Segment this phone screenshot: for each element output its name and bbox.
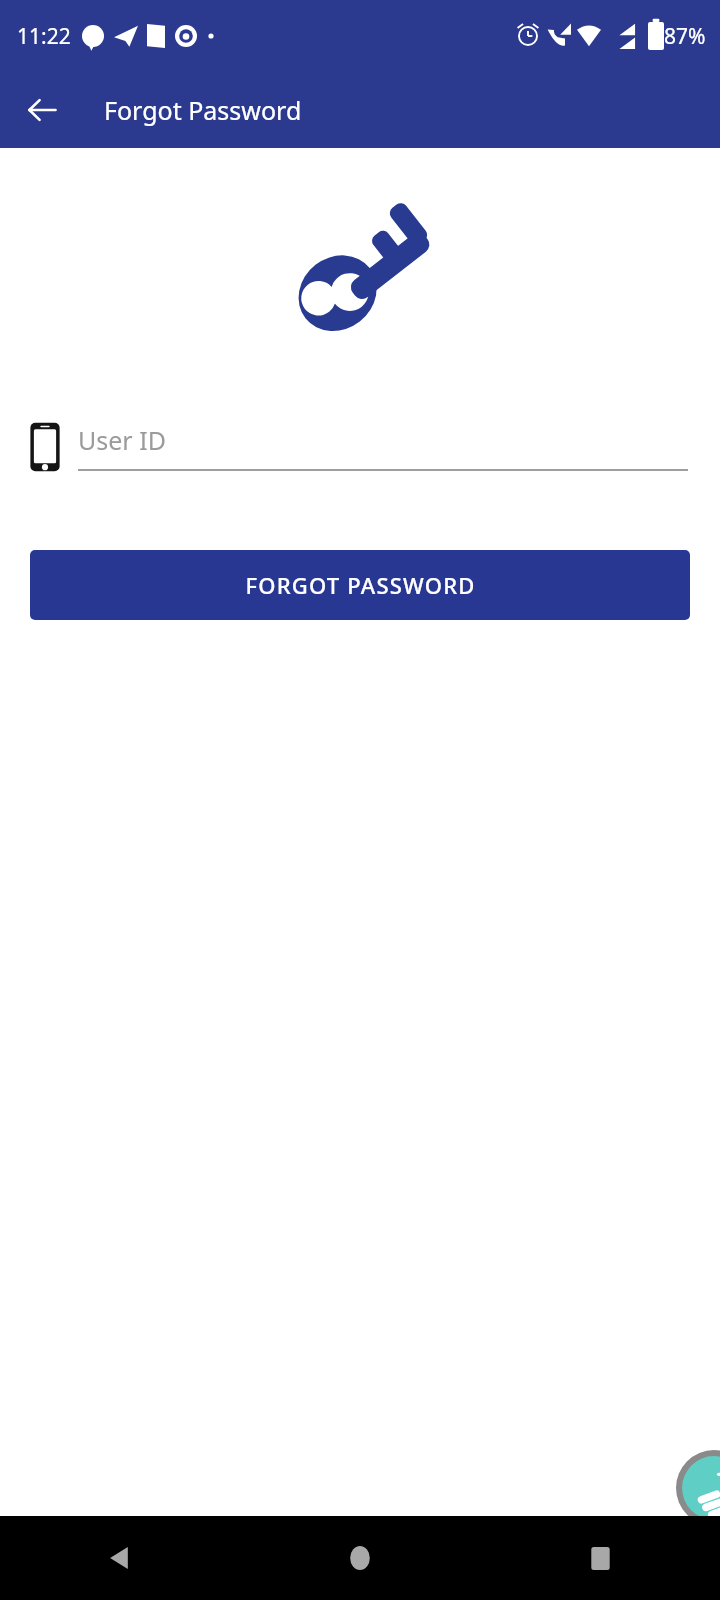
staticText: FORGOT PASSWORD [245, 570, 476, 600]
staticText: User ID [78, 423, 166, 457]
button[interactable]: Accessibility assistant [676, 1450, 720, 1526]
button[interactable]: Back [14, 82, 70, 138]
button[interactable]: FORGOT PASSWORD [30, 550, 690, 620]
button[interactable]: Recent apps [480, 1516, 720, 1600]
staticText: Forgot Password [104, 93, 302, 127]
button[interactable]: User ID [28, 420, 688, 474]
staticText: 11:22 [17, 22, 71, 51]
button[interactable]: Back [0, 1516, 240, 1600]
button[interactable]: Home [240, 1516, 480, 1600]
staticText: 87% [664, 22, 706, 51]
